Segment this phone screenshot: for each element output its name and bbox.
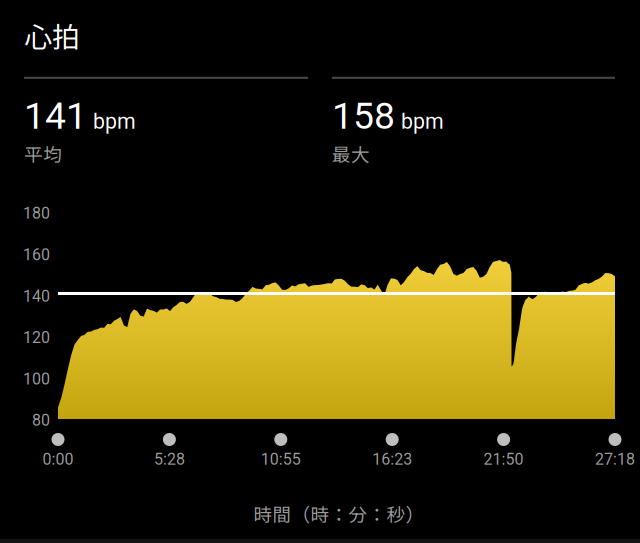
- staticText: 180: [23, 204, 50, 223]
- staticText: 16:23: [372, 450, 412, 469]
- staticText: 141: [24, 94, 87, 138]
- staticText: 21:50: [484, 450, 524, 469]
- staticText: 心拍: [24, 15, 80, 55]
- staticText: 27:18: [595, 450, 635, 469]
- staticText: 80: [32, 411, 50, 430]
- staticText: 120: [23, 328, 50, 347]
- staticText: 140: [23, 287, 50, 306]
- staticText: bpm: [93, 109, 136, 134]
- staticText: 平均: [24, 140, 62, 167]
- staticText: 158: [332, 94, 395, 138]
- staticText: 10:55: [261, 450, 301, 469]
- staticText: 100: [23, 370, 50, 388]
- staticText: 0:00: [42, 450, 73, 469]
- staticText: 5:28: [154, 450, 185, 469]
- staticText: 最大: [332, 140, 370, 167]
- staticText: 時間（時：分：秒）: [253, 500, 424, 527]
- staticText: bpm: [401, 109, 444, 134]
- staticText: 160: [23, 245, 50, 264]
